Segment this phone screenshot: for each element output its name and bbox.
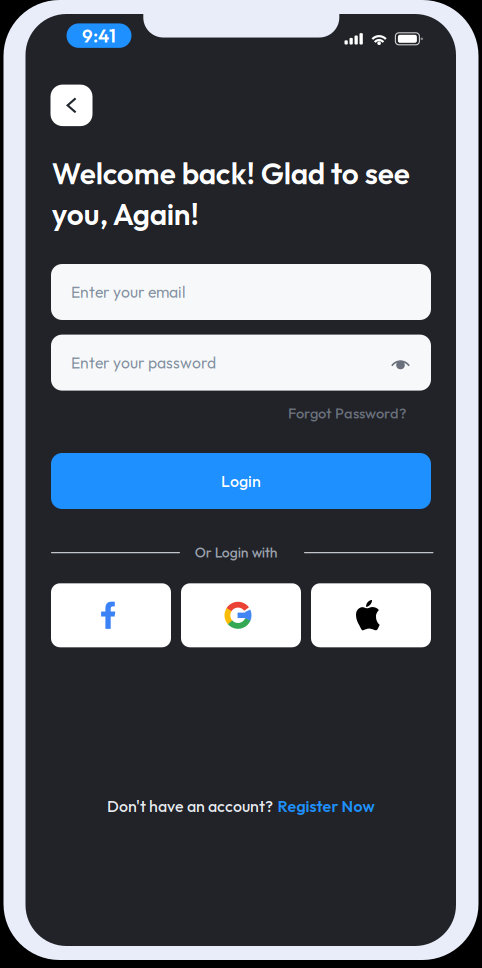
button[interactable]: Sign in with Facebook [51, 583, 171, 647]
staticText: Or Login with [195, 543, 278, 561]
staticText: Register Now [277, 796, 374, 816]
staticText: you, Again! [52, 195, 199, 233]
button[interactable]: Sign in with Apple [311, 583, 431, 647]
button[interactable]: Sign in with Google [181, 583, 301, 647]
staticText: Enter your email [71, 282, 185, 302]
button[interactable]: Login [51, 453, 431, 509]
staticText: Login [221, 471, 261, 491]
staticText: Don't have an account? [107, 796, 273, 816]
button[interactable]: Enter your password [51, 335, 431, 391]
button[interactable]: Enter your email [51, 264, 431, 320]
staticText: Forgot Password? [288, 404, 406, 422]
button[interactable]: Back [50, 85, 92, 126]
button[interactable]: Forgot Password? [51, 403, 406, 423]
staticText: Welcome back! Glad to see [52, 154, 410, 192]
staticText: Enter your password [71, 353, 216, 372]
staticText: 9:41 [82, 24, 116, 47]
button[interactable]: Don't have an account? [25, 795, 456, 817]
